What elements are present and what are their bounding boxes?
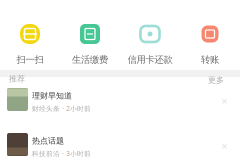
staticText: 推荐 (9, 74, 25, 84)
button[interactable]: 信用卡还款 (120, 0, 180, 70)
staticText: 扫一扫 (16, 54, 43, 65)
button[interactable]: 热点话题 (0, 129, 240, 159)
button[interactable]: 更多 (204, 74, 228, 86)
staticText: ✕ (221, 142, 228, 151)
button[interactable]: 扫一扫 (0, 0, 60, 70)
button[interactable]: 生活缴费 (60, 0, 120, 70)
staticText: 信用卡还款 (127, 54, 172, 65)
staticText: 科技前沿 · 3小时前 (32, 149, 91, 158)
staticText: 转账 (201, 54, 219, 65)
staticText: 更多 (208, 75, 224, 85)
button[interactable]: 理财早知道 (0, 84, 240, 129)
button[interactable]: 转账 (180, 0, 240, 70)
staticText: ✕ (221, 97, 228, 106)
staticText: 财经头条 · 2小时前 (32, 104, 91, 113)
staticText: 生活缴费 (72, 54, 108, 65)
staticText: 热点话题 (32, 136, 64, 146)
staticText: 理财早知道 (32, 91, 72, 101)
